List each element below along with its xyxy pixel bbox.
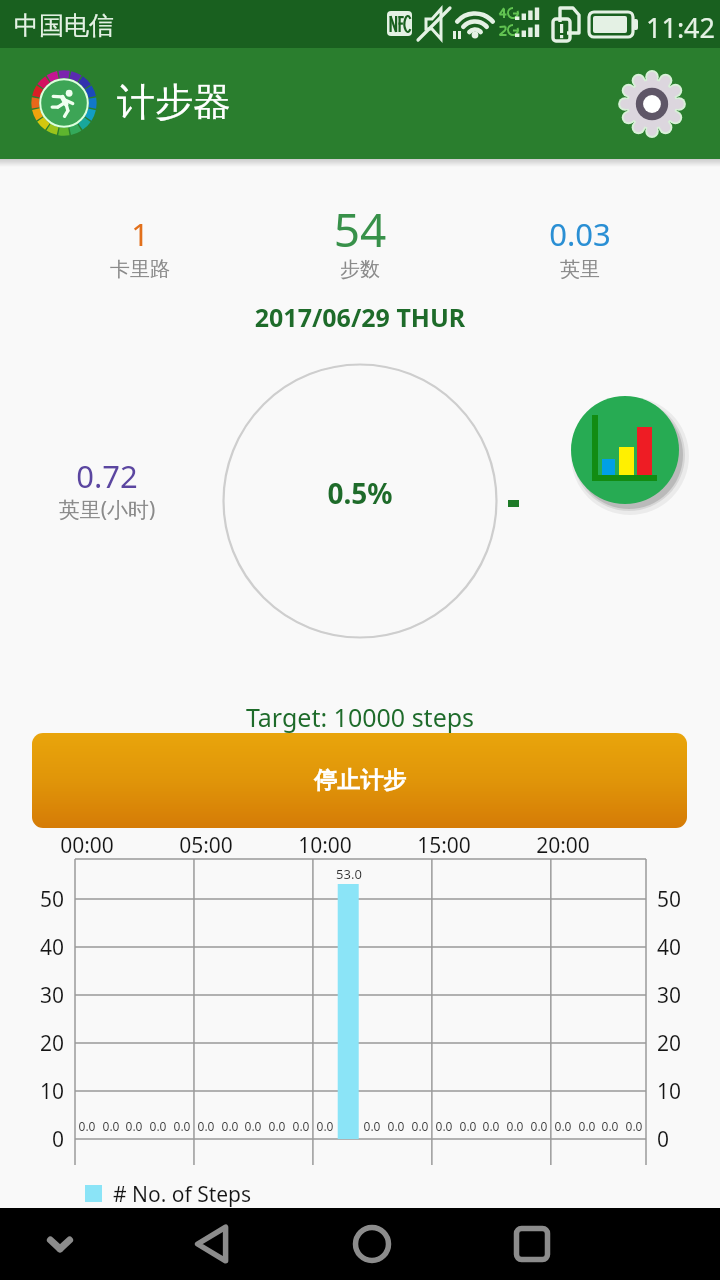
staticText: 0.5% [0, 474, 720, 512]
staticText: 0.0 [190, 1118, 222, 1134]
staticText: 05:00 [161, 831, 251, 860]
button[interactable]: Back [178, 1208, 246, 1280]
staticText: 0.0 [309, 1118, 341, 1134]
staticText: 10 [657, 1077, 717, 1106]
staticText: 0.0 [475, 1118, 507, 1134]
staticText: 0.72 [42, 455, 172, 497]
staticText: 0.0 [499, 1118, 531, 1134]
staticText: 11:42 [646, 9, 716, 46]
staticText: 0.0 [142, 1118, 174, 1134]
staticText: 2017/06/29 THUR [0, 300, 720, 334]
staticText: 00:00 [42, 831, 132, 860]
button[interactable]: Show chart [566, 391, 684, 509]
staticText: 计步器 [117, 78, 231, 126]
button[interactable]: Settings [617, 69, 687, 139]
staticText: 0 [657, 1125, 717, 1154]
staticText: 15:00 [399, 831, 489, 860]
staticText: 0.0 [618, 1118, 650, 1134]
staticText: 0 [4, 1125, 64, 1154]
staticText: 0.0 [261, 1118, 293, 1134]
staticText: 0.0 [571, 1118, 603, 1134]
staticText: 0.0 [428, 1118, 460, 1134]
staticText: 0.0 [285, 1118, 317, 1134]
staticText: 英里(小时) [42, 495, 172, 524]
staticText: 0.0 [118, 1118, 150, 1134]
staticText: 40 [4, 933, 64, 962]
staticText: 0.0 [166, 1118, 198, 1134]
staticText: 1 [30, 213, 250, 255]
staticText: 50 [4, 885, 64, 914]
staticText: 0.03 [470, 213, 690, 255]
staticText: 0.0 [71, 1118, 103, 1134]
staticText: 0.0 [452, 1118, 484, 1134]
staticText: 0.0 [404, 1118, 436, 1134]
button[interactable]: Recents [498, 1208, 566, 1280]
staticText: 英里 [470, 257, 690, 282]
staticText: # No. of Steps [113, 1180, 252, 1209]
staticText: 53.0 [325, 865, 373, 883]
staticText: 中国电信 [14, 10, 114, 41]
staticText: 30 [657, 981, 717, 1010]
staticText: 0.0 [95, 1118, 127, 1134]
staticText: 0.0 [594, 1118, 626, 1134]
staticText: 0.0 [523, 1118, 555, 1134]
staticText: 0.0 [214, 1118, 246, 1134]
staticText: 50 [657, 885, 717, 914]
staticText: 卡里路 [30, 257, 250, 282]
button[interactable]: 停止计步 [32, 733, 687, 828]
staticText: 10:00 [280, 831, 370, 860]
button[interactable]: Home [338, 1208, 406, 1280]
staticText: 10 [4, 1077, 64, 1106]
staticText: 40 [657, 933, 717, 962]
staticText: 0.0 [547, 1118, 579, 1134]
staticText: 20 [657, 1029, 717, 1058]
staticText: 54 [250, 198, 470, 261]
staticText: 停止计步 [314, 766, 406, 795]
button[interactable]: Hide [26, 1208, 94, 1280]
staticText: 0.0 [237, 1118, 269, 1134]
staticText: 步数 [250, 257, 470, 282]
staticText: Target: 10000 steps [0, 700, 720, 734]
staticText: 30 [4, 981, 64, 1010]
staticText: 20 [4, 1029, 64, 1058]
staticText: 0.0 [356, 1118, 388, 1134]
staticText: 20:00 [518, 831, 608, 860]
staticText: 0.0 [380, 1118, 412, 1134]
